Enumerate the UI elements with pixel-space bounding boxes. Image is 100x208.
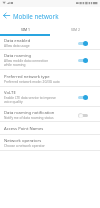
staticText: Allow data usage	[4, 44, 30, 48]
staticText: Data roaming	[4, 53, 32, 59]
staticText: Notify me of data roaming status	[4, 116, 54, 120]
button[interactable]: VoLTE	[0, 87, 100, 107]
staticText: Data roaming notification	[4, 110, 55, 116]
staticText: Enable LTE data service to improve	[4, 96, 56, 100]
staticText: Allow mobile data connection	[4, 59, 49, 63]
button[interactable]: Network operators	[0, 135, 100, 151]
staticText: Access Point Names	[4, 126, 44, 132]
staticText: Preferred network mode: 2G/3G auto	[4, 80, 60, 84]
staticText: Preferred network type	[4, 74, 50, 80]
staticText: Data enabled	[4, 38, 31, 44]
staticText: Choose a network operator	[4, 144, 45, 148]
button[interactable]: SIM 2	[50, 24, 100, 34]
button[interactable]: Preferred network type	[0, 70, 100, 87]
button[interactable]: Access Point Names	[0, 122, 100, 135]
button[interactable]: Data enabled	[0, 36, 100, 50]
staticText: SIM 2	[71, 27, 80, 32]
staticText: SIM 1	[21, 27, 30, 32]
staticText: Mobile network	[13, 12, 59, 20]
staticText: Network operators	[4, 138, 42, 144]
staticText: VoLTE	[4, 90, 16, 96]
button[interactable]: Data roaming	[0, 50, 100, 70]
button[interactable]: Data roaming notification	[0, 107, 100, 122]
button[interactable]: SIM 1	[0, 24, 50, 34]
button[interactable]: Back	[0, 7, 13, 24]
staticText: voice quality	[4, 100, 23, 104]
staticText: while roaming	[4, 63, 26, 67]
